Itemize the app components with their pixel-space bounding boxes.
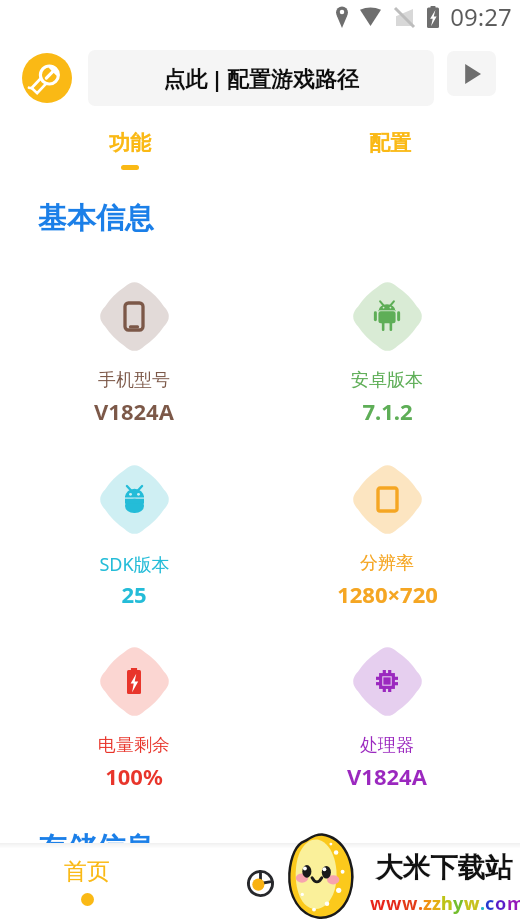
button[interactable]: 首页: [47, 843, 127, 906]
staticText: w: [464, 891, 480, 916]
staticText: 首页: [64, 857, 110, 886]
button[interactable]: 处理器: [309, 644, 465, 786]
staticText: V1824A: [94, 396, 174, 426]
staticText: y: [453, 891, 464, 916]
staticText: z: [423, 891, 432, 916]
staticText: 存储信息: [38, 830, 154, 867]
button[interactable]: SDK版本: [56, 462, 212, 604]
staticText: 配置: [369, 130, 411, 156]
button[interactable]: 手机型号: [56, 279, 212, 421]
staticText: .: [480, 891, 485, 916]
staticText: 7.1.2: [362, 396, 413, 426]
staticText: 手机型号: [98, 369, 170, 392]
staticText: 处理器: [360, 734, 414, 757]
staticText: 100%: [105, 761, 163, 791]
button[interactable]: 分辨率: [309, 462, 465, 604]
staticText: 功能: [109, 130, 151, 156]
staticText: o: [495, 891, 507, 916]
staticText: 基本信息: [38, 200, 154, 237]
staticText: 点此 | 配置游戏路径: [163, 63, 359, 93]
button[interactable]: Tools: [22, 53, 72, 103]
button[interactable]: 功能: [0, 130, 260, 178]
button[interactable]: 配置: [260, 130, 520, 178]
staticText: 09:27: [450, 0, 512, 33]
staticText: 安卓版本: [351, 369, 423, 392]
button[interactable]: Run: [447, 51, 496, 96]
staticText: .: [418, 891, 423, 916]
staticText: m: [507, 891, 520, 916]
staticText: z: [432, 891, 441, 916]
staticText: 25: [121, 579, 147, 609]
button[interactable]: 电量剩余: [56, 644, 212, 786]
staticText: w: [402, 891, 418, 916]
staticText: 电量剩余: [98, 734, 170, 757]
staticText: SDK版本: [99, 552, 170, 577]
staticText: c: [485, 891, 495, 916]
button[interactable]: 点此 | 配置游戏路径: [88, 50, 434, 106]
staticText: h: [441, 891, 453, 916]
staticText: w: [370, 891, 386, 916]
button[interactable]: 安卓版本: [309, 279, 465, 421]
staticText: 分辨率: [360, 552, 414, 575]
staticText: 1280×720: [337, 579, 438, 609]
staticText: w: [386, 891, 402, 916]
staticText: 大米下载站: [375, 851, 513, 886]
staticText: V1824A: [347, 761, 427, 791]
